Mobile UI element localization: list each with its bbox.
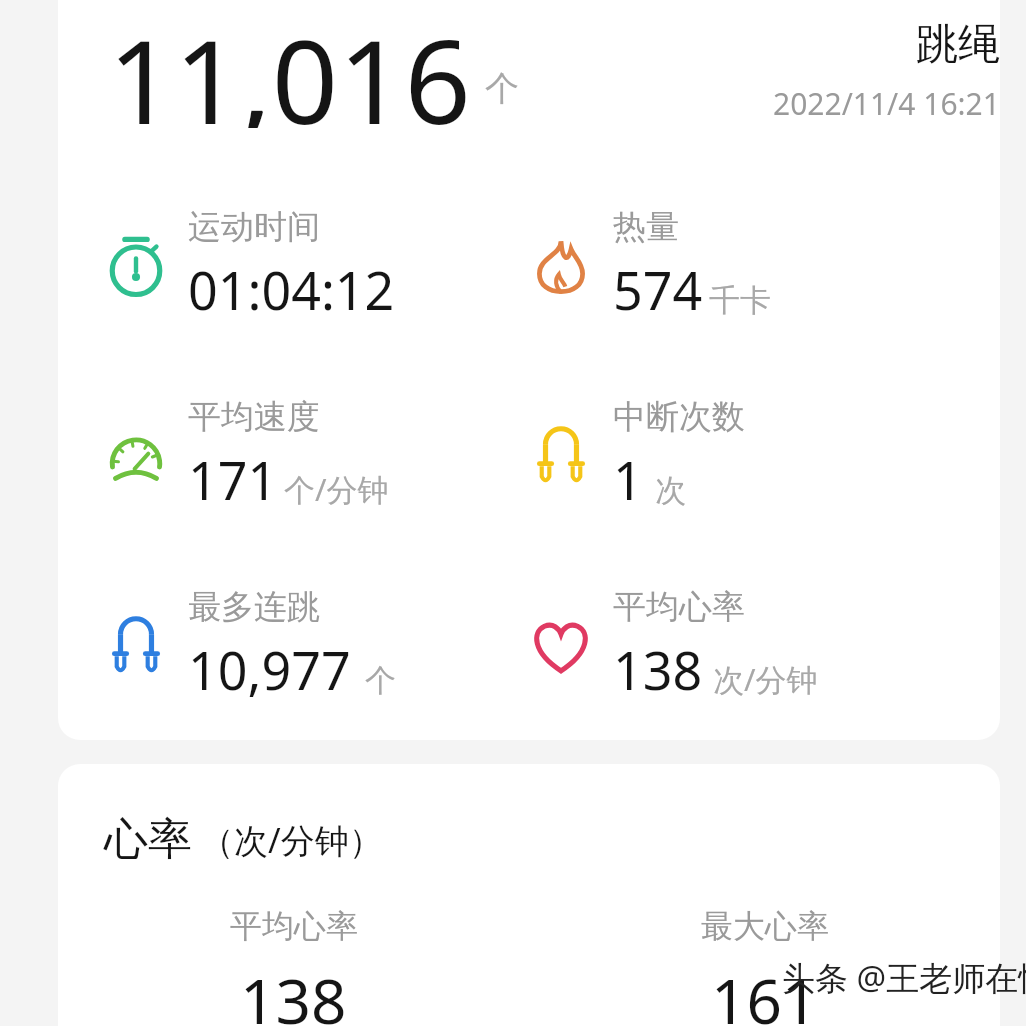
button[interactable]: 最大心率 bbox=[529, 906, 1000, 1026]
staticText: 1 bbox=[613, 444, 643, 515]
staticText: 个/分钟 bbox=[284, 468, 389, 510]
staticText: 平均心率 bbox=[613, 586, 745, 628]
staticText: 138 bbox=[613, 634, 703, 705]
staticText: 01:04:12 bbox=[188, 254, 395, 325]
staticText: 千卡 bbox=[709, 281, 771, 320]
button[interactable]: 热量 bbox=[523, 205, 771, 325]
staticText: 中断次数 bbox=[613, 396, 745, 438]
button[interactable]: 平均心率 bbox=[58, 906, 529, 1026]
staticText: 个 bbox=[365, 661, 396, 700]
staticText: 平均心率 bbox=[230, 906, 358, 946]
button[interactable]: 中断次数 bbox=[523, 395, 745, 515]
staticText: 最大心率 bbox=[701, 906, 829, 946]
staticText: 161 bbox=[711, 958, 818, 1026]
staticText: 次/分钟 bbox=[713, 658, 818, 700]
staticText: 头条 @王老师在忙 bbox=[782, 955, 1026, 1000]
staticText: 574 bbox=[613, 254, 703, 325]
staticText: 次 bbox=[655, 471, 686, 510]
button[interactable]: 最多连跳 bbox=[98, 585, 396, 705]
button[interactable]: 平均速度 bbox=[98, 395, 389, 515]
other: 平均速度 bbox=[98, 417, 174, 493]
staticText: 运动时间 bbox=[188, 206, 320, 248]
staticText: 10,977 bbox=[188, 634, 351, 705]
staticText: 个 bbox=[485, 67, 519, 110]
staticText: 热量 bbox=[613, 206, 679, 248]
staticText: 2022/11/4 16:21 bbox=[773, 83, 1000, 124]
staticText: 最多连跳 bbox=[188, 586, 320, 628]
staticText: 跳绳 bbox=[916, 18, 1000, 71]
staticText: 138 bbox=[240, 958, 347, 1026]
staticText: 11,016 bbox=[108, 0, 471, 128]
other: 热量 bbox=[523, 227, 599, 303]
button[interactable]: 运动时间 bbox=[98, 205, 395, 325]
other: 平均心率 bbox=[523, 607, 599, 683]
other: 最多连跳 bbox=[98, 607, 174, 683]
staticText: 心率 bbox=[104, 812, 192, 867]
staticText: 171 bbox=[188, 444, 278, 515]
other: 运动时间 bbox=[98, 227, 174, 303]
staticText: 平均速度 bbox=[188, 396, 320, 438]
other: 中断次数 bbox=[523, 417, 599, 493]
button[interactable]: 平均心率 bbox=[523, 585, 818, 705]
staticText: （次/分钟） bbox=[200, 817, 383, 863]
